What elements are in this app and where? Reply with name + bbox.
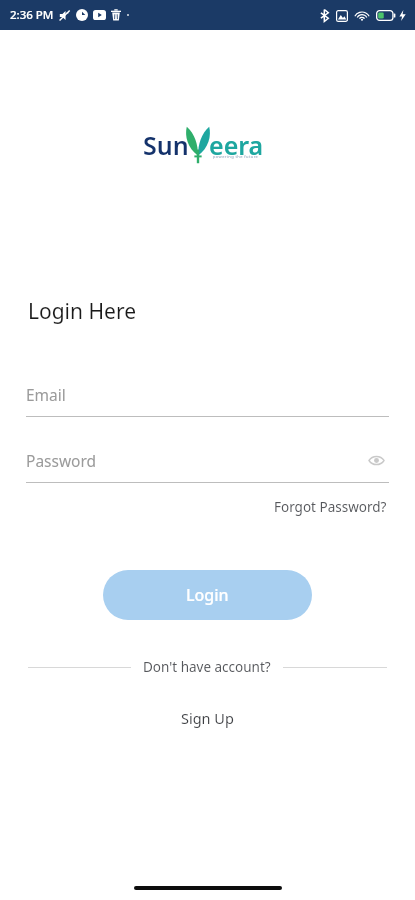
staticText: eera <box>209 128 264 162</box>
staticText: Login Here <box>28 297 136 326</box>
staticText: Sign Up <box>181 708 234 728</box>
staticText: Don't have account? <box>143 658 271 676</box>
staticText: Login <box>186 584 229 606</box>
staticText: powering the future <box>213 154 259 159</box>
button[interactable]: Password <box>26 445 389 483</box>
button[interactable]: Show password <box>363 447 389 473</box>
staticText: Forgot Password? <box>274 498 387 516</box>
staticText: Sun <box>143 128 189 162</box>
staticText: 2:36 PM <box>10 7 54 23</box>
staticText: Email <box>26 384 389 405</box>
staticText: Password <box>26 450 363 471</box>
button[interactable]: Sign Up <box>171 704 244 732</box>
button[interactable]: Email <box>26 379 389 417</box>
button[interactable]: Forgot Password? <box>272 494 389 520</box>
button[interactable]: Login <box>103 570 312 620</box>
